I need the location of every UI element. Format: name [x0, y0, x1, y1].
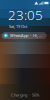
- staticText: 23:05: [8, 6, 43, 24]
- button[interactable]: WhatsApp · Hi, are you free?: [1, 32, 46, 39]
- staticText: Charging · 56%: [11, 92, 39, 98]
- staticText: WhatsApp · Hi, are you free?: [10, 33, 43, 38]
- staticText: Sat, 19 Oct: [9, 24, 27, 29]
